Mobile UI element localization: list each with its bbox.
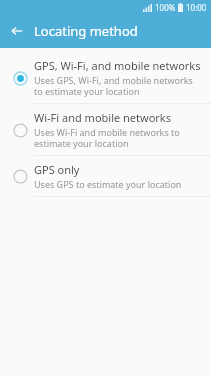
staticText: GPS, Wi-Fi, and mobile networks: [34, 58, 201, 73]
button[interactable]: Navigate up: [4, 18, 30, 44]
staticText: Locating method: [34, 22, 138, 40]
staticText: Wi-Fi and mobile networks: [34, 110, 172, 125]
staticText: 100%: [155, 2, 176, 13]
button[interactable]: GPS only: [0, 156, 211, 196]
staticText: Uses GPS, Wi-Fi, and mobile networks to …: [34, 74, 201, 97]
button[interactable]: Wi-Fi and mobile networks: [0, 104, 211, 155]
staticText: 10:00: [186, 2, 207, 13]
staticText: Uses Wi-Fi and mobile networks to estima…: [34, 126, 201, 149]
staticText: GPS only: [34, 162, 80, 177]
button[interactable]: GPS, Wi-Fi, and mobile networks: [0, 52, 211, 103]
staticText: Uses GPS to estimate your location: [34, 178, 182, 190]
